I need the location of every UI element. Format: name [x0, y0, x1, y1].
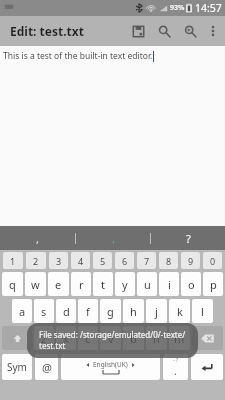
- staticText: English(UK): [93, 360, 128, 369]
- staticText: g: [107, 304, 114, 319]
- button[interactable]: i: [159, 272, 179, 296]
- button[interactable]: 7: [137, 252, 156, 269]
- button[interactable]: 3: [49, 252, 68, 269]
- staticText: 4: [78, 255, 84, 267]
- button[interactable]: l: [192, 299, 213, 323]
- button[interactable]: 9: [181, 252, 200, 269]
- staticText: i: [168, 277, 171, 292]
- staticText: This is a test of the built-in text edit…: [3, 50, 153, 62]
- staticText: s: [41, 304, 47, 319]
- button[interactable]: Save: [125, 16, 151, 46]
- button[interactable]: k: [169, 299, 190, 323]
- button[interactable]: 5: [93, 252, 112, 269]
- button[interactable]: y: [115, 272, 135, 296]
- button[interactable]: j: [146, 299, 167, 323]
- staticText: e: [55, 277, 62, 292]
- staticText: n: [153, 331, 160, 346]
- button[interactable]: h: [123, 299, 144, 323]
- button[interactable]: ,: [0, 226, 75, 250]
- button[interactable]: Search: [151, 16, 177, 46]
- button[interactable]: a: [12, 299, 32, 323]
- button[interactable]: g: [100, 299, 121, 323]
- button[interactable]: m: [169, 326, 190, 350]
- button[interactable]: w: [25, 272, 46, 296]
- staticText: ?: [186, 231, 191, 246]
- staticText: Edit: test.txt: [10, 23, 84, 39]
- staticText: 2: [33, 255, 39, 267]
- button[interactable]: n: [146, 326, 167, 350]
- staticText: p: [210, 277, 217, 292]
- button[interactable]: v: [100, 326, 121, 350]
- button[interactable]: e: [48, 272, 69, 296]
- button[interactable]: Sym: [2, 354, 32, 380]
- staticText: a: [19, 304, 26, 319]
- button[interactable]: This is a test of the built-in text edit…: [0, 46, 225, 226]
- staticText: k: [177, 304, 183, 319]
- staticText: b: [130, 331, 137, 346]
- button[interactable]: 4: [71, 252, 90, 269]
- button[interactable]: s: [34, 299, 54, 323]
- button[interactable]: z: [34, 326, 54, 350]
- staticText: y: [122, 277, 128, 292]
- button[interactable]: 1: [3, 252, 23, 269]
- staticText: ··?: [173, 357, 178, 364]
- staticText: r: [79, 277, 84, 292]
- staticText: j: [155, 304, 158, 319]
- staticText: File saved: /storage/emulated/0/-texte/ …: [39, 329, 186, 352]
- staticText: z: [41, 331, 47, 346]
- staticText: l: [201, 304, 204, 319]
- staticText: .: [112, 231, 115, 246]
- button[interactable]: o: [181, 272, 201, 296]
- button[interactable]: 8: [159, 252, 178, 269]
- button[interactable]: ?: [151, 226, 225, 250]
- button[interactable]: More options: [203, 16, 223, 46]
- staticText: d: [63, 304, 70, 319]
- staticText: v: [108, 331, 114, 346]
- button[interactable]: Shift: [2, 326, 32, 350]
- button[interactable]: t: [93, 272, 113, 296]
- staticText: Sym: [7, 360, 27, 374]
- staticText: 9: [188, 255, 194, 267]
- button[interactable]: f: [78, 299, 98, 323]
- staticText: 3: [56, 255, 62, 267]
- staticText: 8: [166, 255, 172, 267]
- staticText: o: [188, 277, 195, 292]
- button[interactable]: 6: [115, 252, 134, 269]
- button[interactable]: p: [203, 272, 223, 296]
- button[interactable]: b: [123, 326, 144, 350]
- staticText: @: [42, 360, 52, 375]
- staticText: q: [9, 277, 16, 292]
- button[interactable]: Period: [163, 354, 188, 380]
- button[interactable]: r: [71, 272, 91, 296]
- staticText: c: [85, 331, 91, 346]
- staticText: x: [63, 331, 69, 346]
- staticText: f: [86, 304, 90, 319]
- button[interactable]: q: [2, 272, 23, 296]
- button[interactable]: Backspace: [192, 326, 223, 350]
- staticText: h: [130, 304, 137, 319]
- button[interactable]: d: [56, 299, 76, 323]
- staticText: 5: [100, 255, 106, 267]
- button[interactable]: 2: [26, 252, 46, 269]
- button[interactable]: x: [56, 326, 76, 350]
- staticText: 0: [210, 255, 216, 267]
- button[interactable]: At sign: [35, 354, 58, 380]
- button[interactable]: Find next: [177, 16, 203, 46]
- staticText: 7: [144, 255, 150, 267]
- button[interactable]: c: [78, 326, 98, 350]
- button[interactable]: 0: [203, 252, 222, 269]
- button[interactable]: u: [137, 272, 157, 296]
- staticText: 6: [122, 255, 128, 267]
- staticText: 1: [10, 255, 16, 267]
- staticText: m: [174, 331, 185, 346]
- staticText: 14:57: [195, 1, 222, 15]
- button[interactable]: Enter: [191, 354, 223, 380]
- staticText: t: [101, 277, 105, 292]
- staticText: .: [174, 364, 177, 378]
- button[interactable]: Space, English (UK): [61, 354, 160, 380]
- staticText: u: [144, 277, 151, 292]
- staticText: 93%: [170, 3, 185, 13]
- staticText: ,: [36, 231, 39, 246]
- staticText: w: [31, 277, 40, 292]
